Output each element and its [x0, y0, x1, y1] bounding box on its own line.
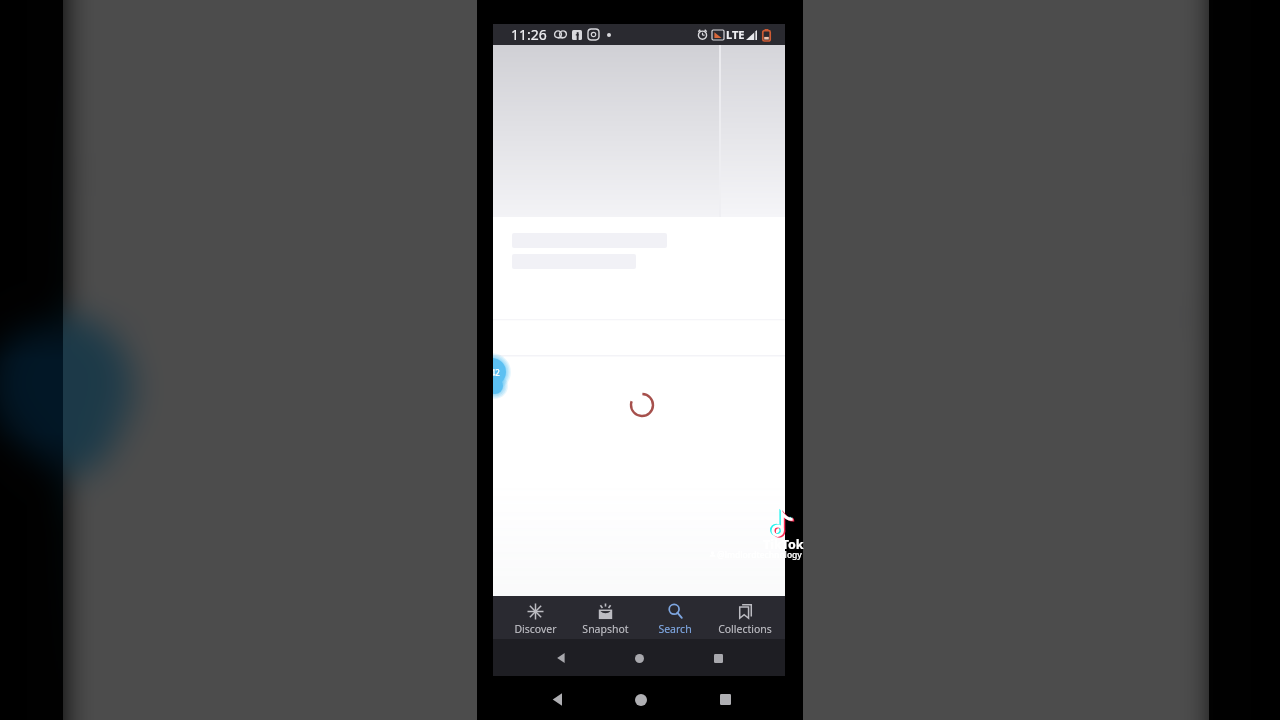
button[interactable]: Recent apps: [720, 694, 731, 705]
button[interactable]: Discover: [501, 596, 570, 636]
staticText: Search: [658, 622, 692, 636]
button[interactable]: Home: [635, 694, 647, 706]
button[interactable]: Collections: [710, 596, 780, 636]
staticText: LTE: [726, 27, 745, 42]
button[interactable]: Recent apps: [714, 654, 723, 663]
button[interactable]: Search: [640, 596, 710, 636]
staticText: TikTok: [763, 536, 804, 553]
staticText: Discover: [514, 622, 557, 636]
button[interactable]: Home: [635, 654, 644, 663]
button[interactable]: Snapshot: [570, 596, 640, 636]
button[interactable]: Back: [555, 652, 567, 664]
staticText: Snapshot: [582, 622, 629, 636]
staticText: 0:42: [493, 367, 500, 378]
button[interactable]: Result card, loading: [493, 45, 785, 319]
staticText: 11:26: [511, 25, 547, 44]
staticText: @lmdlordtechnology: [717, 549, 802, 561]
staticText: Collections: [718, 622, 772, 636]
button[interactable]: Back: [550, 692, 565, 707]
